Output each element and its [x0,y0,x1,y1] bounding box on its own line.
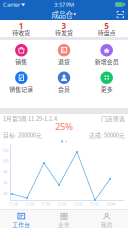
button[interactable]: 销售记录 [0,71,43,92]
staticText: 成品仓 [51,10,72,19]
button[interactable]: 新增会员 [85,44,128,64]
staticText: 门店筛选 [101,115,125,122]
staticText: 待收货 [12,29,30,36]
staticText: 新增会员 [95,58,119,65]
staticText: 业务 [58,221,70,228]
button[interactable]: 1 [0,22,43,35]
staticText: 12-01 [57,202,66,206]
button[interactable]: 退货 [43,44,85,64]
staticText: Carrier [3,1,20,8]
staticText: 100 [2,159,8,163]
staticText: 目标: 200000元 [3,131,42,139]
staticText: 工作台 [12,221,30,228]
staticText: 40 [3,191,7,196]
staticText: 11-30 [41,202,50,206]
staticText: 3:57 PM [54,1,74,8]
button[interactable]: 3 [43,22,85,35]
button[interactable]: 成品仓 [51,9,77,20]
staticText: 待发货 [55,29,73,36]
staticText: 11-29 [25,202,34,206]
staticText: 我的 [101,221,113,228]
button[interactable]: 扫一扫 [113,9,128,20]
staticText: 1 [19,21,24,31]
staticText: 待盘点 [98,29,116,36]
button[interactable]: 更多 [85,71,128,92]
staticText: 会员 [58,85,70,93]
button[interactable]: 5 [85,22,128,35]
staticText: 60 [3,181,7,185]
button[interactable]: 工作台 [0,210,43,228]
staticText: 11-28 [9,202,18,206]
button[interactable]: 业务 [43,210,85,228]
staticText: 25% [55,121,73,132]
staticText: 12-04 [106,202,115,206]
staticText: 达成: 50000元 [89,131,125,139]
staticText: 销售 [15,58,27,65]
button[interactable]: 门店筛选 [101,115,125,122]
button[interactable]: 销售 [0,44,43,64]
button[interactable]: 会员 [43,71,85,92]
staticText: 80 [3,170,7,174]
staticText: 12-02 [74,202,83,206]
staticText: 1月第5周 11.29-1.2.4 [3,115,57,122]
staticText: 3 [61,21,66,31]
staticText: 退货 [58,58,70,65]
staticText: 销售记录 [9,85,33,93]
staticText: 更多 [101,85,113,93]
staticText: 5 [104,21,109,31]
staticText: 12-03 [90,202,99,206]
button[interactable]: 我的 [85,210,128,228]
staticText: 120 [2,148,8,152]
